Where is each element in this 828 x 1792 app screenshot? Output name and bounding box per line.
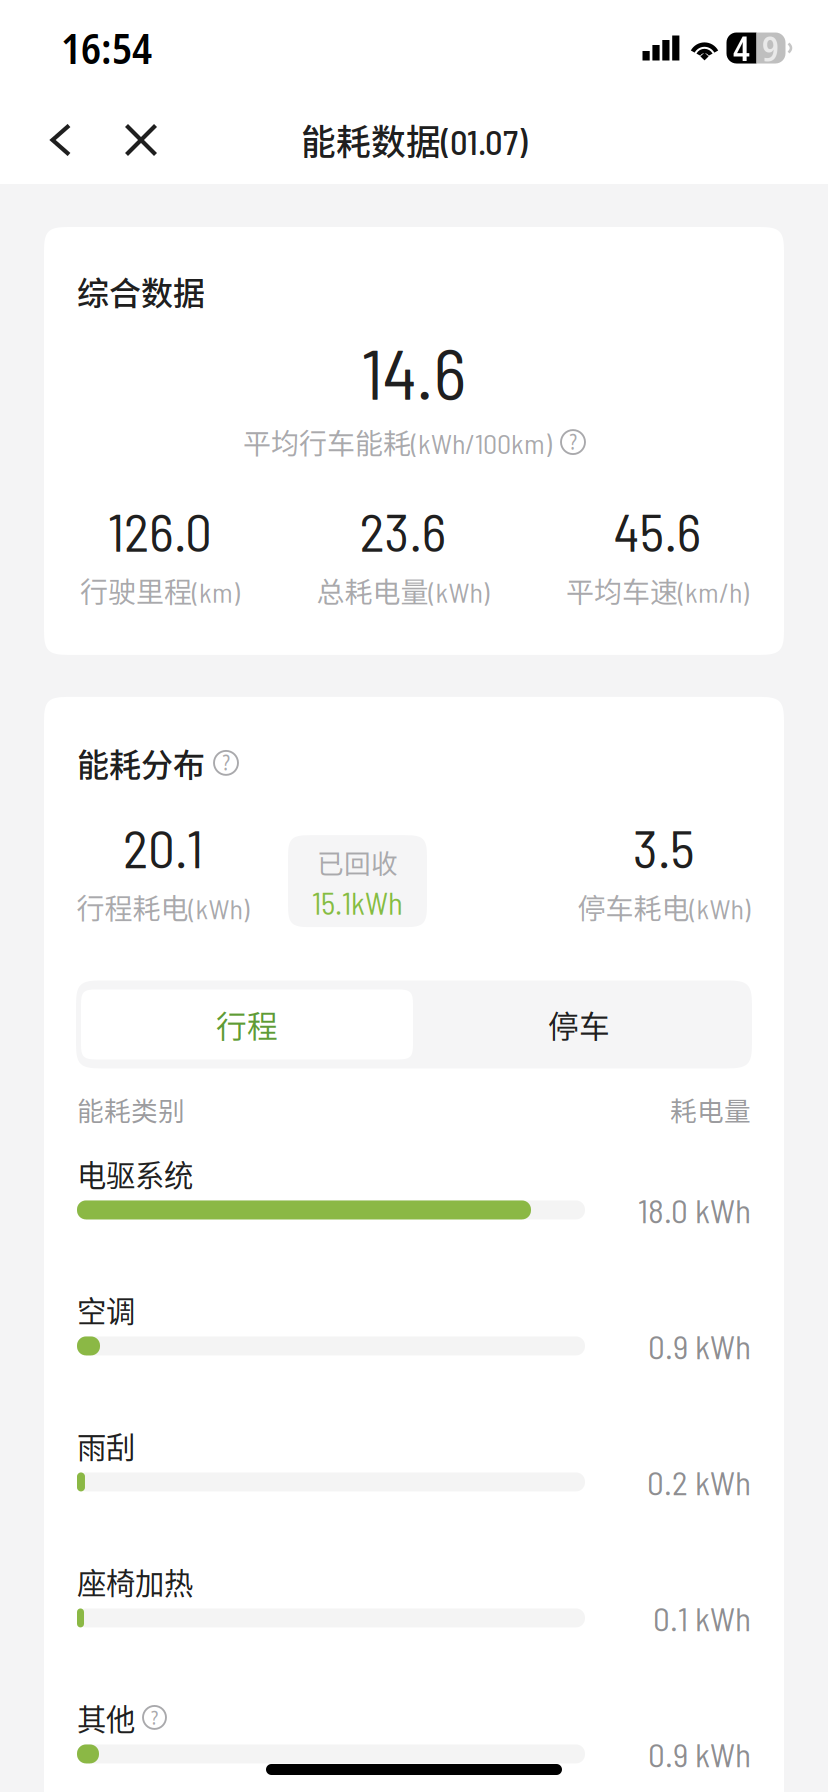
- staticText: 4: [733, 24, 750, 72]
- staticText: 20.1: [123, 815, 203, 879]
- button[interactable]: Back: [30, 96, 92, 184]
- staticText: 座椅加热: [77, 1560, 193, 1603]
- staticText: 其他: [77, 1696, 135, 1739]
- staticText: 停车耗电(kWh): [577, 887, 750, 927]
- staticText: 平均车速(km/h): [566, 570, 749, 611]
- staticText: 126.0: [108, 498, 212, 562]
- button[interactable]: 停车: [413, 989, 745, 1059]
- staticText: 能耗类别: [77, 1090, 185, 1129]
- staticText: 已回收: [317, 842, 398, 881]
- staticText: 电驱系统: [77, 1152, 193, 1195]
- staticText: 行程: [216, 1002, 278, 1047]
- staticText: 14.6: [361, 329, 466, 414]
- staticText: 停车: [548, 1002, 610, 1047]
- staticText: 0.9 kWh: [648, 1326, 751, 1366]
- staticText: 3.5: [633, 815, 695, 879]
- staticText: ?: [569, 427, 576, 456]
- staticText: 耗电量: [670, 1090, 751, 1129]
- staticText: 空调: [77, 1288, 135, 1331]
- staticText: 23.6: [359, 498, 446, 562]
- button[interactable]: 行程: [81, 989, 413, 1059]
- staticText: 15.1kWh: [312, 884, 403, 921]
- staticText: 18.0 kWh: [638, 1190, 751, 1230]
- staticText: 9: [762, 24, 779, 72]
- staticText: 45.6: [613, 498, 701, 562]
- staticText: 综合数据: [77, 268, 205, 314]
- staticText: 能耗分布: [77, 740, 205, 786]
- staticText: 平均行车能耗(kWh/100km): [243, 422, 552, 462]
- button[interactable]: Close: [110, 96, 172, 184]
- staticText: 能耗数据(01.07): [301, 115, 527, 165]
- staticText: ?: [151, 1703, 158, 1731]
- staticText: 0.9 kWh: [648, 1734, 751, 1774]
- staticText: 16:54: [61, 20, 152, 76]
- staticText: 0.2 kWh: [647, 1462, 751, 1502]
- staticText: 行驶里程(km): [80, 570, 240, 611]
- staticText: 行程耗电(kWh): [76, 887, 249, 927]
- staticText: 雨刮: [77, 1424, 135, 1467]
- staticText: ?: [222, 748, 229, 777]
- staticText: 总耗电量(kWh): [316, 570, 489, 611]
- staticText: 0.1 kWh: [653, 1598, 751, 1638]
